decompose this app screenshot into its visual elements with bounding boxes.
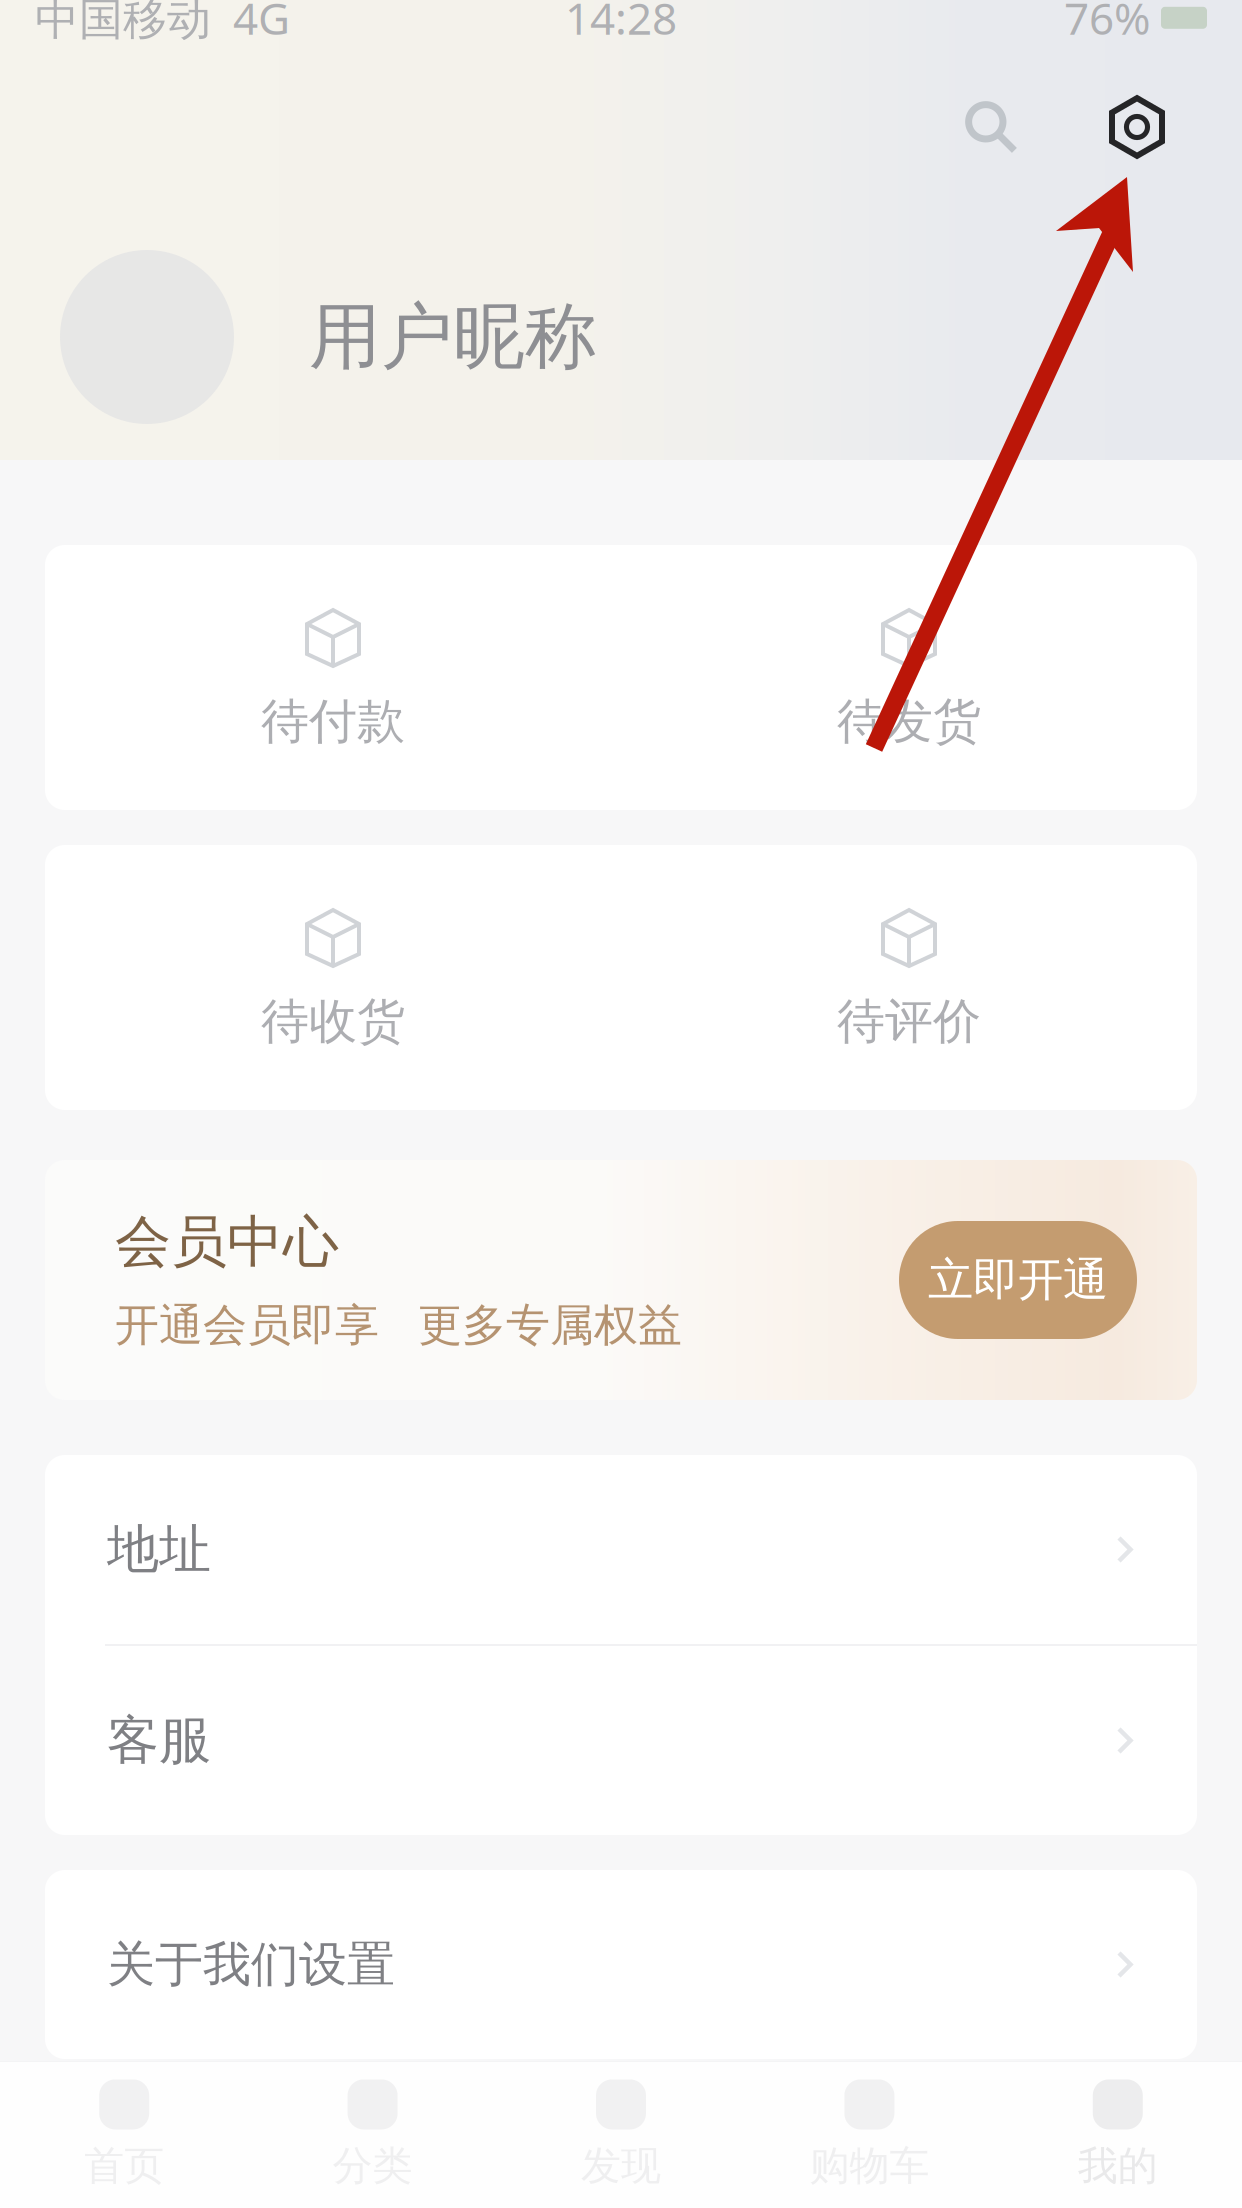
staticText: 我的 [1078, 2141, 1158, 2190]
button[interactable]: 立即开通 [899, 1221, 1137, 1339]
button[interactable]: 分类 [248, 2062, 497, 2208]
button[interactable]: 地址 [45, 1455, 1197, 1644]
button[interactable]: 发现 [497, 2062, 745, 2208]
staticText: 待评价 [837, 992, 981, 1051]
button[interactable]: 待发货 [621, 545, 1197, 810]
button[interactable]: 用户昵称 [309, 293, 597, 381]
staticText: 中国移动 4G [35, 0, 290, 47]
button[interactable]: Search [936, 67, 1046, 187]
button[interactable]: Settings [1082, 67, 1192, 187]
staticText: 用户昵称 [309, 293, 597, 381]
button[interactable]: 关于我们设置 [45, 1870, 1197, 2059]
button[interactable]: 待收货 [45, 845, 621, 1110]
staticText: 首页 [84, 2141, 164, 2190]
staticText: 立即开通 [928, 1252, 1108, 1308]
button[interactable]: 购物车 [745, 2062, 994, 2208]
button[interactable]: Profile photo [60, 250, 234, 424]
staticText: 76% [1064, 0, 1151, 47]
button[interactable]: 待付款 [45, 545, 621, 810]
button[interactable]: 首页 [0, 2062, 248, 2208]
staticText: 发现 [581, 2141, 661, 2190]
staticText: 待收货 [261, 992, 405, 1051]
staticText: 开通会员即享 更多专属权益 [115, 1298, 682, 1352]
staticText: 14:28 [565, 0, 677, 47]
staticText: 购物车 [809, 2141, 929, 2190]
staticText: 地址 [107, 1518, 211, 1581]
staticText: 关于我们设置 [107, 1935, 395, 1994]
button[interactable]: 我的 [994, 2062, 1242, 2208]
button[interactable]: 待评价 [621, 845, 1197, 1110]
staticText: 待发货 [837, 692, 981, 751]
staticText: 分类 [333, 2141, 413, 2190]
button[interactable]: 客服 [45, 1646, 1197, 1835]
staticText: 客服 [107, 1709, 211, 1772]
staticText: 会员中心 [115, 1208, 339, 1276]
staticText: 待付款 [261, 692, 405, 751]
